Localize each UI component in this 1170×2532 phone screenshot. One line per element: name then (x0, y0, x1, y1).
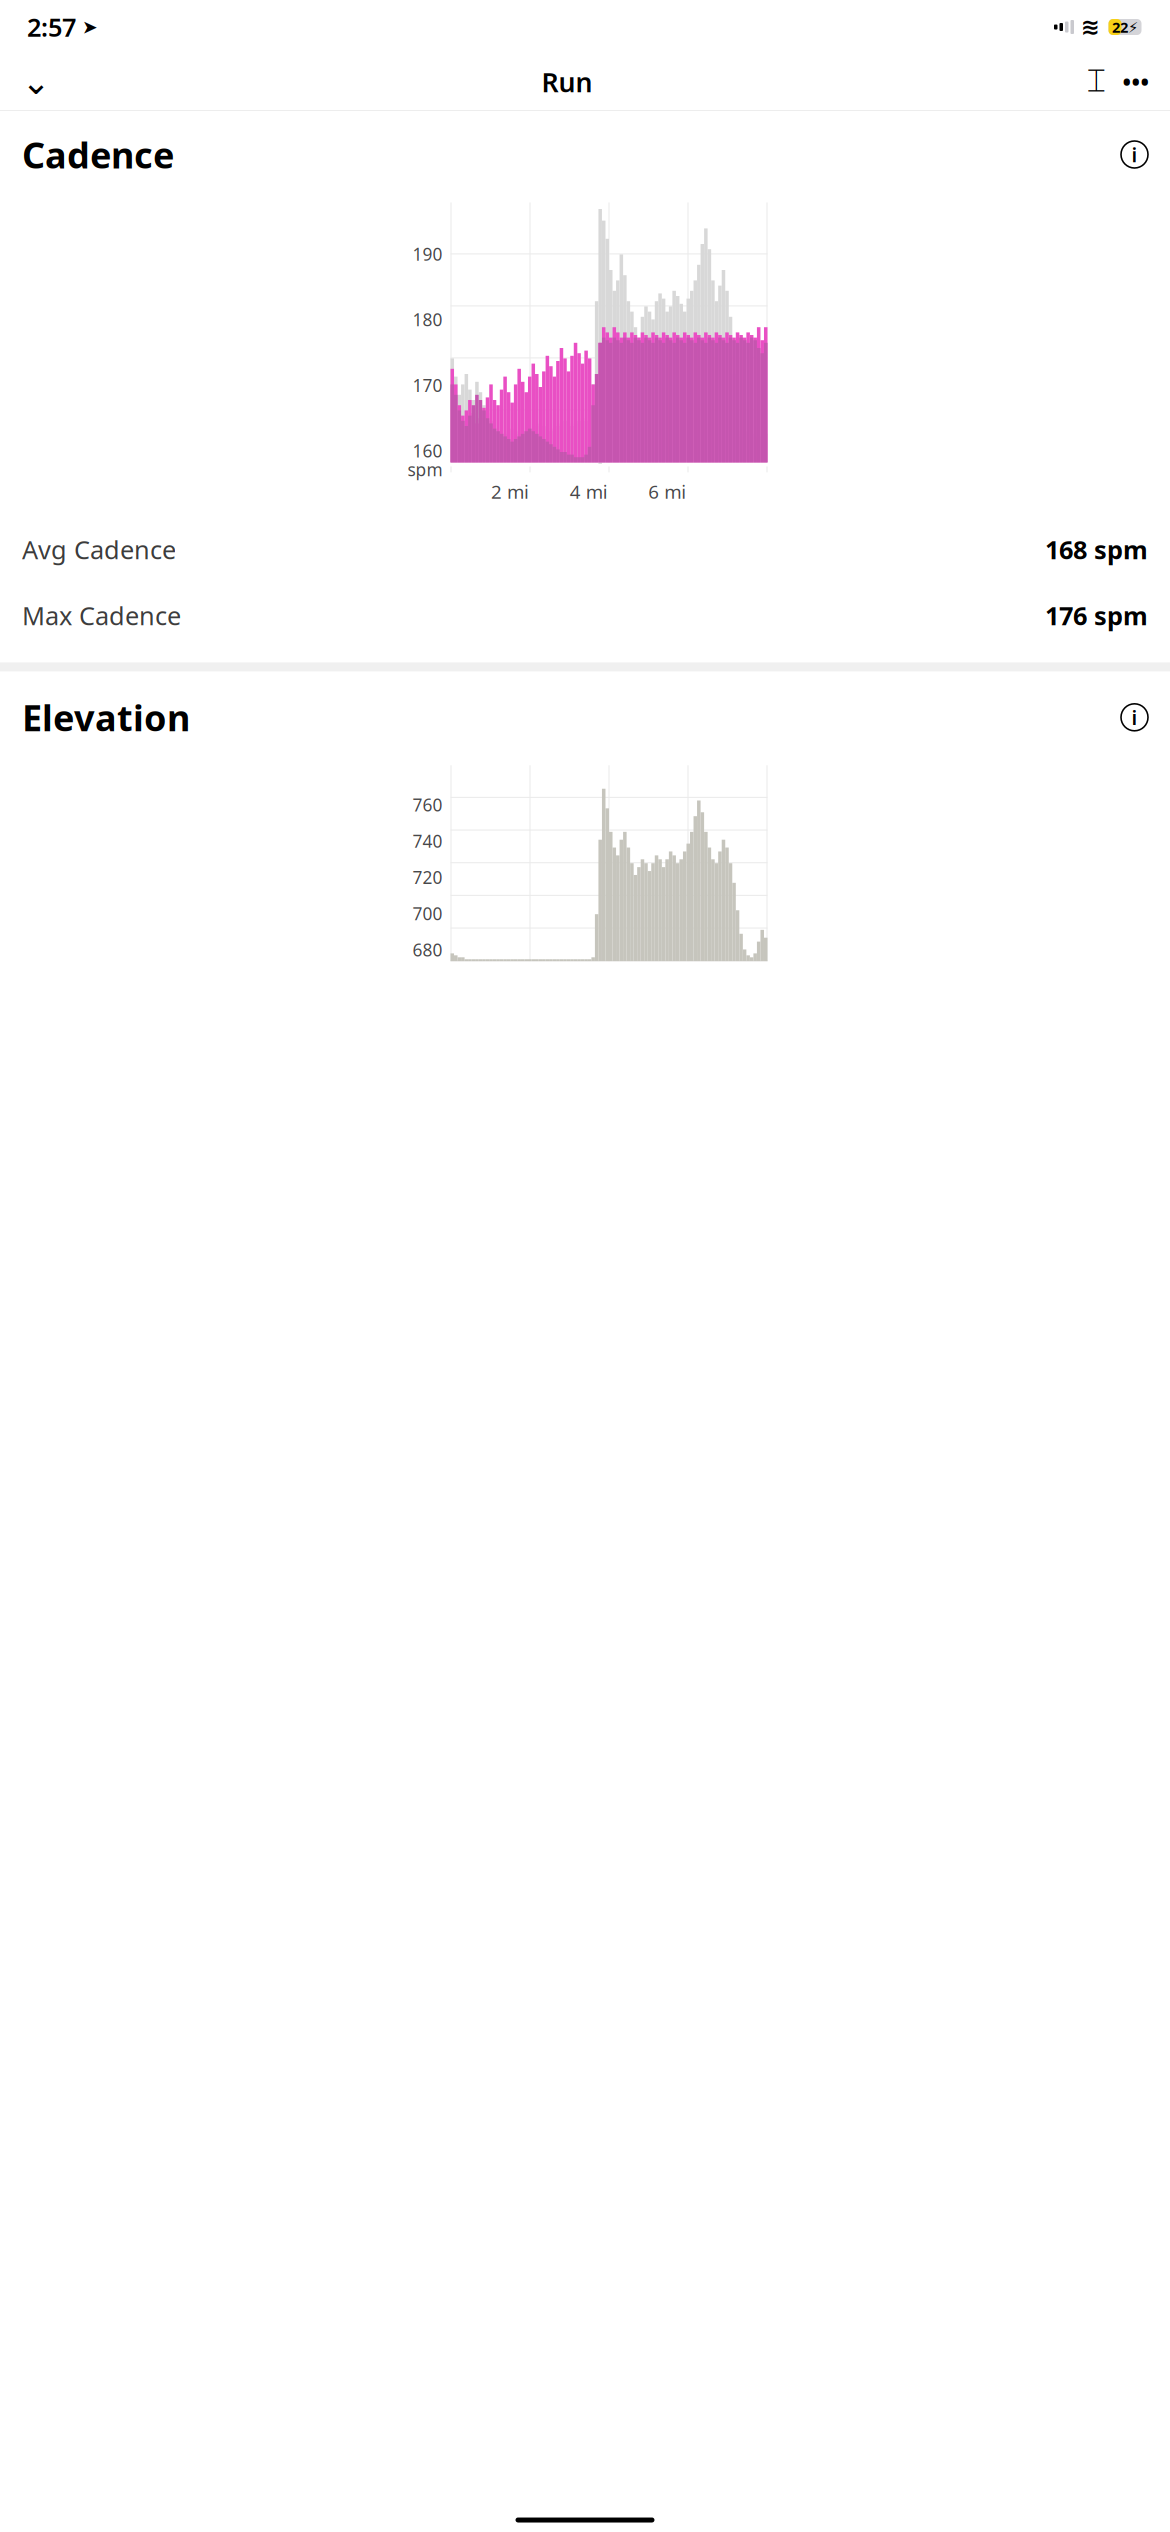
staticText: 160 (412, 439, 442, 462)
staticText: 168 spm (1045, 533, 1148, 566)
staticText: 190 (412, 242, 442, 265)
staticText: ➤ (82, 16, 98, 38)
staticText: 176 spm (1045, 599, 1148, 632)
staticText: 2:57 (27, 10, 76, 44)
staticText: spm (407, 458, 442, 481)
staticText: ⌄ (21, 62, 50, 102)
staticText: 180 (412, 308, 442, 331)
button[interactable]: Bookmark (1076, 60, 1116, 104)
staticText: 22⚡︎ (1112, 17, 1138, 37)
staticText: 2 mi (491, 479, 529, 504)
staticText: Avg Cadence (22, 533, 176, 566)
staticText: 6 mi (648, 479, 686, 504)
button[interactable]: More options (1116, 60, 1156, 104)
staticText: 700 (412, 902, 442, 925)
staticText: 170 (412, 374, 442, 397)
button[interactable]: Dismiss (14, 60, 58, 104)
button[interactable]: About Elevation (1121, 704, 1148, 731)
staticText: Cadence (22, 131, 174, 178)
staticText: 680 (412, 938, 442, 961)
staticText: 740 (412, 829, 442, 852)
staticText: ⌶ (1086, 66, 1105, 98)
staticText: Max Cadence (22, 599, 181, 632)
staticText: Elevation (22, 693, 190, 741)
staticText: 720 (412, 866, 442, 889)
staticText: Run (541, 64, 592, 100)
staticText: i (1131, 141, 1137, 168)
staticText: 760 (412, 793, 442, 816)
staticText: ≋ (1081, 14, 1100, 40)
staticText: 4 mi (570, 479, 608, 504)
button[interactable]: About Cadence (1121, 141, 1148, 168)
staticText: ••• (1122, 67, 1149, 97)
staticText: i (1131, 704, 1137, 731)
